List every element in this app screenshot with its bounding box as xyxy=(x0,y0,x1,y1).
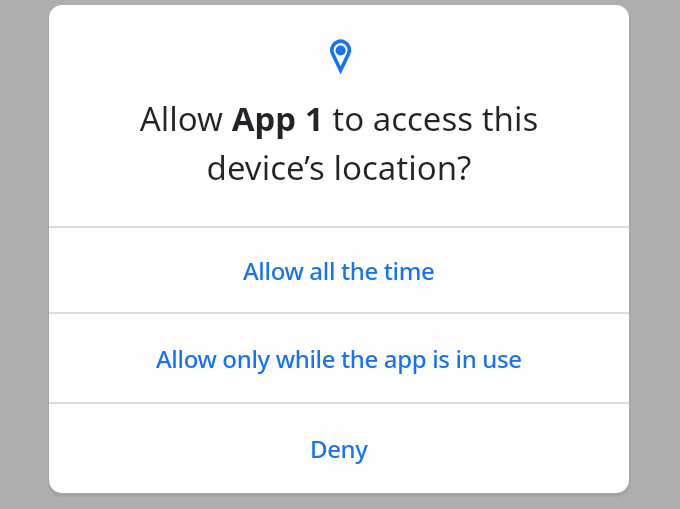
button[interactable]: Allow all the time xyxy=(49,228,629,312)
staticText: Allow only while the app is in use xyxy=(156,342,522,375)
staticText: Allow App 1 to access this device’s loca… xyxy=(49,96,629,189)
button[interactable]: Allow only while the app is in use xyxy=(49,314,629,402)
staticText: Allow all the time xyxy=(243,254,435,287)
staticText: Deny xyxy=(310,432,368,465)
button[interactable]: Deny xyxy=(49,404,629,493)
